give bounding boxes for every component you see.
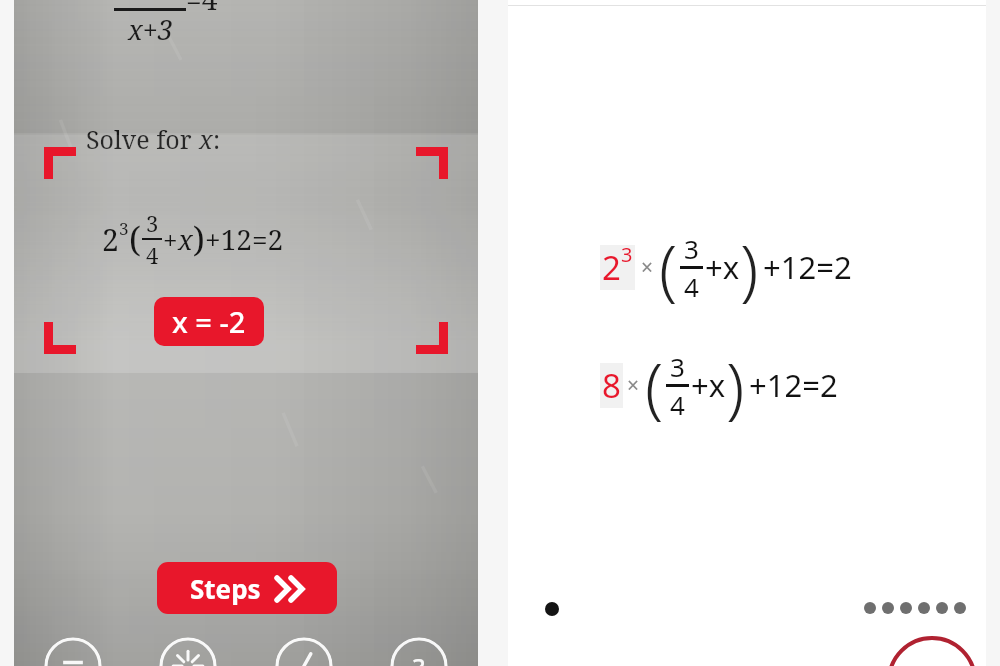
- staticText: 8: [602, 363, 621, 408]
- staticText: x+3: [128, 11, 173, 48]
- button[interactable]: History: [275, 637, 333, 666]
- staticText: x = -2: [172, 302, 246, 341]
- staticText: (: [645, 340, 664, 430]
- staticText: ×: [641, 253, 654, 282]
- button[interactable]: Next: [887, 636, 977, 666]
- staticText: :: [213, 122, 221, 156]
- staticText: +12=2: [763, 246, 852, 288]
- button[interactable]: Steps: [157, 562, 337, 614]
- staticText: ): [193, 216, 205, 262]
- staticText: 4: [146, 240, 159, 270]
- button[interactable]: Help: [390, 637, 448, 666]
- staticText: 2: [102, 219, 119, 260]
- staticText: x: [199, 122, 213, 156]
- button[interactable]: Equals: [44, 637, 102, 666]
- staticText: ?: [413, 649, 425, 666]
- staticText: +x: [705, 246, 740, 288]
- staticText: 4: [670, 387, 685, 422]
- staticText: +x: [691, 364, 726, 406]
- staticText: 3: [146, 208, 159, 238]
- staticText: 3: [621, 241, 633, 268]
- staticText: Solve for: [86, 122, 199, 156]
- staticText: Steps: [190, 571, 261, 606]
- staticText: =4: [186, 0, 218, 18]
- staticText: 4: [684, 269, 699, 304]
- staticText: x: [178, 221, 193, 258]
- staticText: +: [163, 222, 178, 257]
- staticText: ): [726, 340, 745, 430]
- staticText: (: [659, 222, 678, 312]
- staticText: +12=2: [205, 220, 284, 258]
- button[interactable]: x = -2: [154, 297, 264, 346]
- button[interactable]: Flash: [159, 637, 217, 666]
- staticText: 3: [670, 349, 685, 384]
- staticText: 2: [602, 245, 621, 290]
- staticText: 3: [684, 231, 699, 266]
- staticText: ×: [627, 371, 640, 400]
- staticText: (: [129, 216, 141, 262]
- staticText: ): [740, 222, 759, 312]
- staticText: +12=2: [749, 364, 838, 406]
- staticText: 3: [119, 217, 129, 240]
